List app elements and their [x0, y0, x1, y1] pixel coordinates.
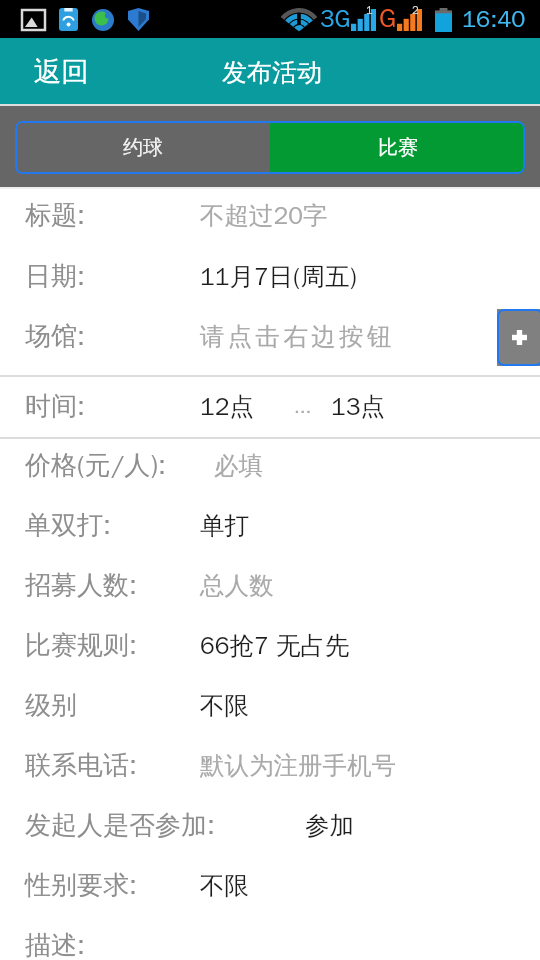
staticText: 日期: [25, 260, 85, 293]
staticText: 13点 [331, 391, 385, 422]
button[interactable]: 日期: [0, 246, 540, 306]
staticText: 场馆: [25, 320, 85, 353]
button[interactable]: 发起人是否参加: [0, 795, 540, 855]
button[interactable]: 添加场馆 [497, 309, 540, 366]
staticText: 11月7日(周五) [200, 261, 357, 292]
staticText: 时间: [25, 390, 85, 423]
staticText: 3G [320, 4, 351, 34]
staticText: 招募人数: [25, 569, 137, 602]
staticText: 不超过20字 [200, 200, 328, 231]
staticText: 发起人是否参加: [25, 809, 215, 842]
staticText: 参加 [305, 810, 354, 841]
button[interactable]: 性别要求: [0, 855, 540, 915]
staticText: 2 [412, 3, 419, 17]
staticText: 比赛 [378, 135, 418, 160]
button[interactable]: 比赛规则: [0, 615, 540, 675]
button[interactable]: 价格(元/人): [0, 435, 540, 495]
button[interactable]: 描述: [0, 915, 540, 960]
staticText: 单打 [200, 510, 249, 541]
button[interactable]: 比赛 [270, 121, 525, 174]
staticText: 级别 [25, 689, 77, 722]
button[interactable]: 12点 [200, 391, 254, 422]
staticText: 比赛规则: [25, 629, 137, 662]
staticText: 1 [366, 3, 373, 17]
staticText: G [379, 2, 397, 35]
staticText: 16:40 [462, 4, 526, 34]
button[interactable]: 标题: [0, 185, 540, 245]
staticText: 总人数 [200, 570, 274, 601]
button[interactable]: 返回 [0, 49, 105, 96]
staticText: 默认为注册手机号 [200, 750, 396, 781]
staticText: 联系电话: [25, 749, 137, 782]
button[interactable]: 单双打: [0, 495, 540, 555]
staticText: 单双打: [25, 509, 111, 542]
staticText: 66抢7 无占先 [200, 630, 350, 661]
staticText: 标题: [25, 199, 85, 232]
button[interactable]: 联系电话: [0, 735, 540, 795]
button[interactable]: 13点 [331, 391, 385, 422]
staticText: 约球 [123, 135, 163, 160]
staticText: 12点 [200, 391, 254, 422]
staticText: 不限 [200, 690, 249, 721]
button[interactable]: 场馆: [0, 306, 540, 366]
staticText: 发布活动 [222, 57, 322, 88]
staticText: 描述: [25, 929, 85, 960]
staticText: 不限 [200, 870, 249, 901]
staticText: 性别要求: [25, 869, 137, 902]
staticText: 必填 [214, 450, 263, 481]
button[interactable]: 级别 [0, 675, 540, 735]
button[interactable]: 约球 [15, 121, 270, 174]
staticText: 请点击右边按钮 [200, 321, 395, 352]
staticText: 价格(元/人): [25, 449, 166, 482]
button[interactable]: 招募人数: [0, 555, 540, 615]
staticText: ... [294, 395, 312, 419]
